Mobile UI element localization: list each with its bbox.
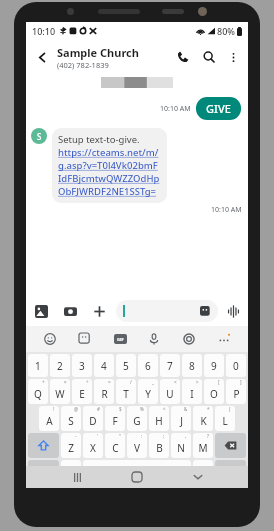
button[interactable]: Emoji: [39, 328, 61, 350]
button[interactable]: Gallery: [31, 301, 51, 321]
button[interactable]: ]: [226, 379, 246, 404]
button[interactable]: >: [182, 379, 202, 404]
button[interactable]: 5: [116, 354, 136, 377]
button[interactable]: ?: [193, 433, 213, 458]
staticText: X: [90, 441, 96, 455]
staticText: T: [123, 387, 129, 401]
staticText: Y: [145, 387, 151, 401]
staticText: 2: [57, 359, 63, 373]
button[interactable]: 1: [28, 354, 48, 377]
button[interactable]: 9: [204, 354, 224, 377]
staticText: E: [79, 387, 85, 401]
button[interactable]: More: [89, 301, 109, 321]
button[interactable]: Stickers: [74, 328, 96, 350]
button[interactable]: Back: [188, 467, 208, 487]
button[interactable]: More options: [213, 328, 235, 350]
button[interactable]: Call: [170, 44, 196, 70]
button[interactable]: Recent apps: [67, 467, 87, 487]
staticText: R: [101, 387, 108, 401]
button[interactable]: Backspace: [215, 433, 246, 458]
button[interactable]: ^: [149, 406, 169, 431]
button[interactable]: English (US): [83, 460, 191, 486]
staticText: I: [190, 387, 194, 401]
button[interactable]: ;: [149, 433, 169, 458]
button[interactable]: Back: [30, 45, 54, 69]
button[interactable]: GIVE: [196, 97, 241, 120]
staticText: W: [55, 387, 65, 401]
button[interactable]: ': [83, 433, 103, 458]
button[interactable]: Search: [196, 44, 222, 70]
staticText: ;: [163, 433, 165, 439]
button[interactable]: <: [160, 379, 180, 404]
button[interactable]: Enter: [215, 460, 246, 486]
button[interactable]: [: [204, 379, 224, 404]
button[interactable]: ": [105, 433, 125, 458]
button[interactable]: Camera: [60, 301, 80, 321]
button[interactable]: +: [28, 379, 48, 404]
button[interactable]: &: [171, 406, 191, 431]
staticText: Z: [68, 441, 74, 455]
staticText: 5: [123, 359, 129, 373]
button[interactable]: 8: [182, 354, 202, 377]
button[interactable]: Voice input: [143, 328, 165, 350]
button[interactable]: (: [215, 406, 235, 431]
button[interactable]: 6: [138, 354, 158, 377]
staticText: U: [166, 387, 174, 401]
staticText: https://cteams.net/m/g.asp?v=T0l4Vk02bmF…: [58, 146, 161, 198]
button[interactable]: ÷: [72, 379, 92, 404]
button[interactable]: Home: [127, 467, 147, 487]
button[interactable]: 7: [160, 354, 180, 377]
button[interactable]: =: [94, 379, 114, 404]
staticText: ]: [240, 379, 242, 385]
button[interactable]: ,: [171, 433, 191, 458]
staticText: Q: [34, 387, 42, 401]
button[interactable]: :: [127, 433, 147, 458]
button[interactable]: GIF: [109, 328, 131, 350]
button[interactable]: @: [61, 406, 81, 431]
button[interactable]: 4: [94, 354, 114, 377]
button[interactable]: Shift: [28, 433, 59, 458]
staticText: S: [37, 131, 42, 142]
button[interactable]: .: [193, 460, 213, 486]
button[interactable]: #: [83, 406, 103, 431]
button[interactable]: Setup text-to-give.: [52, 128, 167, 203]
staticText: Setup text-to-give.: [58, 133, 140, 146]
button[interactable]: [116, 300, 218, 322]
staticText: Sample Church: [57, 45, 139, 60]
button[interactable]: 3: [72, 354, 92, 377]
staticText: 9: [211, 359, 217, 373]
button[interactable]: *: [193, 406, 213, 431]
button[interactable]: !: [39, 406, 59, 431]
staticText: -: [75, 433, 77, 439]
button[interactable]: -: [61, 433, 81, 458]
button[interactable]: Sample Church: [57, 45, 170, 70]
staticText: H: [155, 414, 163, 428]
button[interactable]: More options: [222, 46, 244, 68]
staticText: !: [53, 406, 55, 412]
button[interactable]: 0: [226, 354, 246, 377]
button[interactable]: $: [105, 406, 125, 431]
staticText: ?: [207, 433, 209, 439]
staticText: M: [198, 441, 208, 455]
button[interactable]: Voice message: [223, 301, 243, 321]
button[interactable]: %: [127, 406, 147, 431]
button[interactable]: /: [116, 379, 136, 404]
staticText: 80%: [217, 25, 235, 37]
staticText: N: [177, 441, 185, 455]
staticText: B: [156, 441, 163, 455]
staticText: 10:10 AM: [160, 104, 191, 114]
staticText: $: [119, 406, 122, 412]
button[interactable]: !#1: [28, 460, 59, 486]
button[interactable]: _: [138, 379, 158, 404]
staticText: English (US): [119, 469, 156, 478]
staticText: %: [140, 406, 144, 412]
button[interactable]: Settings: [178, 328, 200, 350]
staticText: 0: [233, 359, 239, 373]
button[interactable]: ,: [61, 460, 81, 486]
button[interactable]: 2: [50, 354, 70, 377]
staticText: ,: [185, 433, 187, 439]
button[interactable]: ×: [50, 379, 70, 404]
staticText: 7: [167, 359, 173, 373]
staticText: O: [210, 387, 218, 401]
